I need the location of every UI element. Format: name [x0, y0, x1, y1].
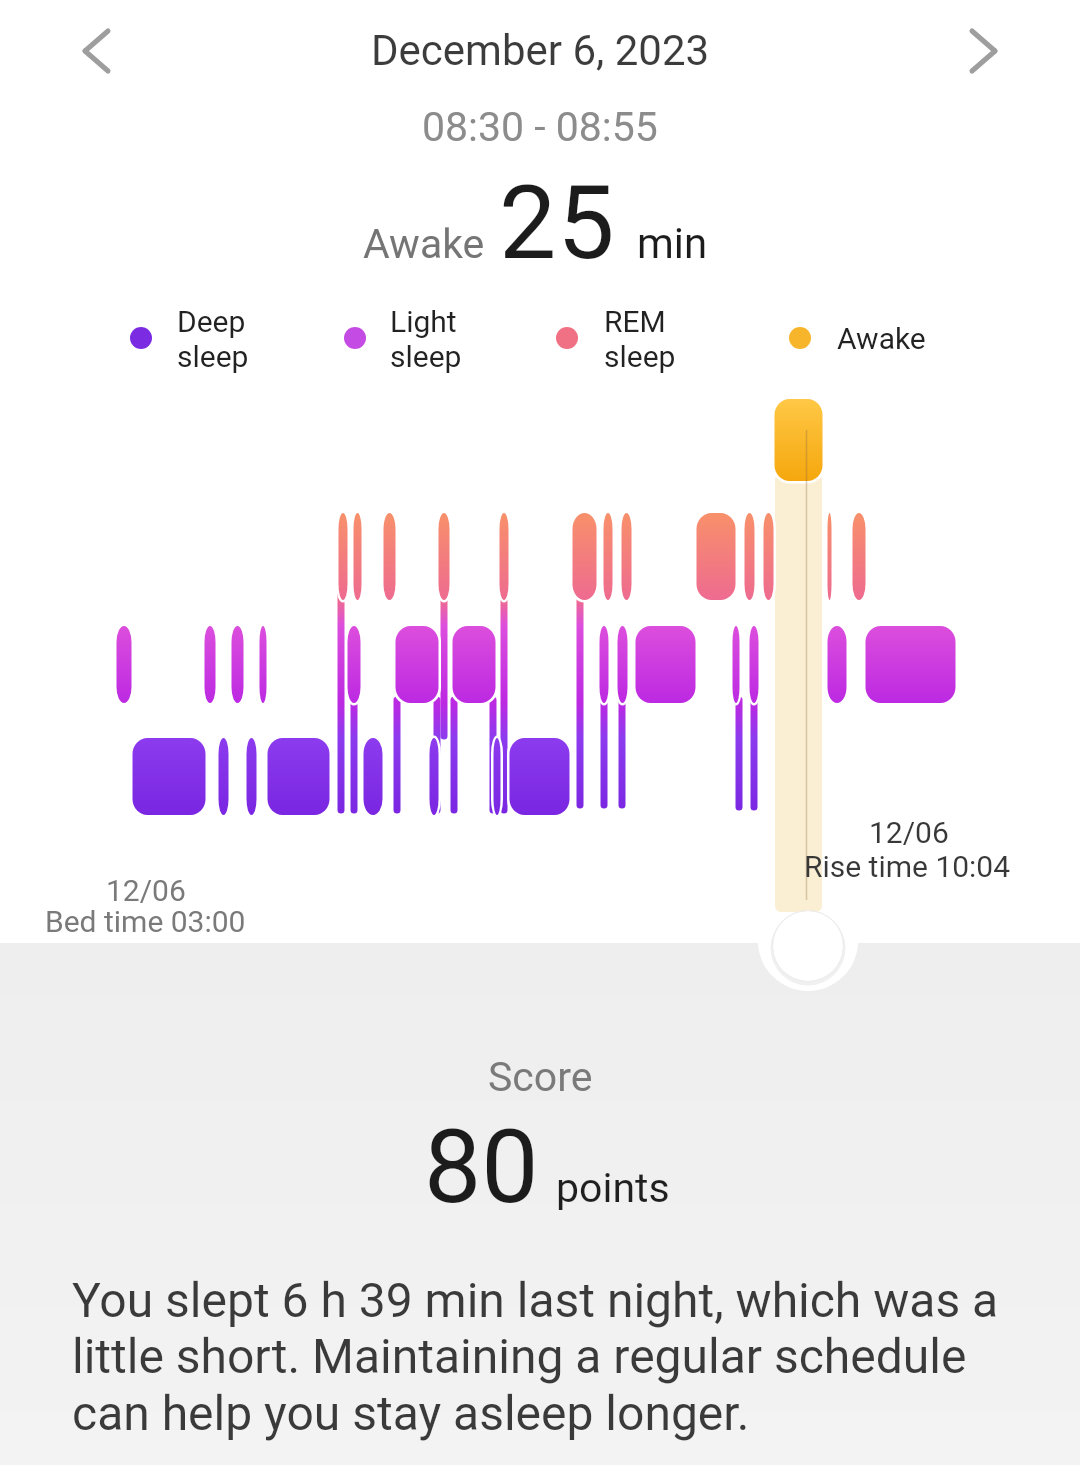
staticText: 80 [424, 1107, 539, 1227]
staticText: min [637, 219, 708, 268]
staticText: 12/06 [106, 873, 186, 908]
staticText: Deep sleep [177, 304, 249, 374]
staticText: points [556, 1164, 670, 1212]
staticText: REM sleep [604, 304, 676, 374]
button[interactable] [770, 905, 846, 981]
staticText: 25 [499, 163, 616, 283]
staticText: Light sleep [390, 304, 462, 374]
staticText: You slept 6 h 39 min last night, which w… [72, 1272, 1022, 1442]
button[interactable] [950, 20, 1020, 90]
staticText: 12/06 [869, 815, 949, 850]
staticText: Awake [837, 321, 926, 356]
button[interactable] [60, 20, 130, 90]
staticText: Awake [363, 220, 485, 268]
staticText: Rise time 10:04 [804, 849, 1011, 884]
staticText: Score [488, 1053, 593, 1101]
staticText: Bed time 03:00 [45, 904, 246, 939]
staticText: 08:30 - 08:55 [422, 103, 658, 151]
staticText: December 6, 2023 [371, 26, 710, 75]
